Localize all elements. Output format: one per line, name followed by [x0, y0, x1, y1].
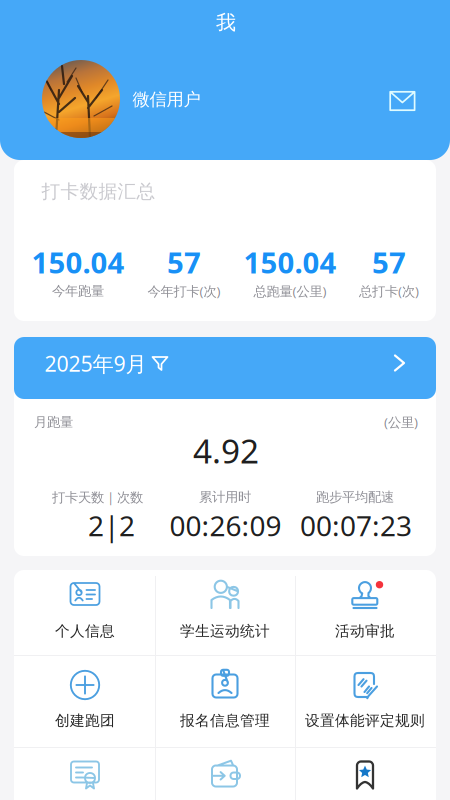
button[interactable]: Messages [380, 79, 424, 123]
button[interactable] [14, 570, 436, 800]
staticText: 总打卡(次) [359, 282, 419, 300]
staticText: 今年打卡(次) [147, 282, 220, 300]
staticText: 总跑量(公里) [253, 282, 326, 300]
staticText: 今年跑量 [52, 283, 104, 299]
button[interactable]: 学生运动统计 [14, 570, 436, 800]
staticText: 设置体能评定规则 [305, 711, 425, 729]
staticText: 打卡天数 | 次数 [52, 488, 143, 506]
staticText: 4.92 [193, 428, 259, 473]
staticText: 学生运动统计 [180, 622, 270, 640]
staticText: 累计用时 [199, 489, 251, 505]
staticText: 150.04 [243, 242, 336, 281]
staticText: 创建跑团 [55, 711, 115, 729]
button[interactable] [14, 570, 436, 800]
button[interactable] [14, 570, 436, 800]
staticText: 57 [167, 242, 201, 281]
staticText: 活动审批 [335, 622, 395, 640]
staticText: 2025年9月 [44, 349, 146, 378]
button[interactable]: 2025年9月 [14, 337, 436, 389]
staticText: 我 [216, 10, 236, 35]
button[interactable]: 设置体能评定规则 [14, 570, 436, 800]
staticText: 月跑量 [34, 414, 73, 430]
button[interactable]: 活动审批 [14, 570, 436, 800]
button[interactable]: 个人信息 [14, 570, 436, 800]
staticText: 150.04 [31, 242, 124, 281]
staticText: 微信用户 [132, 89, 200, 110]
staticText: 个人信息 [55, 622, 115, 640]
staticText: (公里) [384, 413, 418, 431]
staticText: 00:07:23 [300, 507, 412, 544]
staticText: 打卡数据汇总 [41, 180, 155, 203]
staticText: 00:26:09 [169, 507, 281, 544]
button[interactable]: 报名信息管理 [14, 570, 436, 800]
staticText: 跑步平均配速 [316, 489, 394, 505]
button[interactable]: 创建跑团 [14, 570, 436, 800]
staticText: 报名信息管理 [180, 711, 270, 729]
staticText: 57 [372, 242, 406, 281]
staticText: 2|2 [88, 507, 135, 544]
